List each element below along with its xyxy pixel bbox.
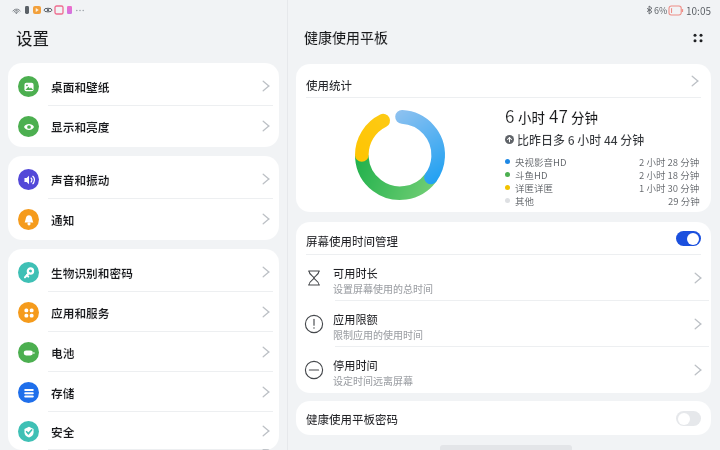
staticText: 详匿详匿: [515, 181, 554, 194]
button[interactable]: More options: [685, 25, 711, 51]
staticText: 6%: [654, 4, 668, 17]
staticText: 设定时间远离屏幕: [333, 373, 413, 387]
button[interactable]: Switch on: [676, 231, 701, 246]
staticText: 斗鱼HD: [515, 168, 548, 181]
staticText: 29 分钟: [668, 194, 700, 207]
staticText: 安全: [51, 423, 261, 440]
button[interactable]: 电池: [8, 332, 279, 372]
staticText: 设置: [16, 26, 49, 50]
staticText: 存储: [51, 384, 261, 401]
staticText: 小时: [515, 107, 549, 127]
staticText: 屏幕使用时间管理: [306, 233, 676, 250]
staticText: 通知: [51, 211, 261, 228]
staticText: 应用限额: [333, 311, 378, 327]
staticText: 6: [505, 103, 515, 128]
staticText: 声音和振动: [51, 171, 261, 188]
staticText: 10:05: [686, 3, 711, 17]
button[interactable]: 桌面和壁纸: [8, 66, 279, 106]
button[interactable]: 使用统计: [296, 64, 711, 98]
button[interactable]: 应用和服务: [8, 292, 279, 332]
button[interactable]: 显示和亮度: [8, 106, 279, 146]
staticText: 比昨日多 6 小时 44 分钟: [517, 131, 645, 148]
button[interactable]: 声音和振动: [8, 159, 279, 199]
button[interactable]: 应用限额: [296, 301, 711, 347]
button[interactable]: 存储: [8, 372, 279, 412]
button[interactable]: 通知: [8, 199, 279, 239]
staticText: 设置屏幕使用的总时间: [333, 281, 433, 295]
staticText: 限制应用的使用时间: [333, 327, 423, 341]
staticText: 桌面和壁纸: [51, 78, 261, 95]
staticText: 47: [549, 103, 568, 128]
staticText: 其他: [515, 194, 535, 207]
button[interactable]: 屏幕使用时间管理: [296, 222, 711, 255]
button[interactable]: 可用时长: [296, 255, 711, 301]
staticText: 2 小时 18 分钟: [639, 168, 700, 181]
staticText: 健康使用平板密码: [306, 411, 676, 428]
staticText: 生物识别和密码: [51, 264, 261, 281]
staticText: 分钟: [568, 107, 599, 127]
staticText: 电池: [51, 344, 261, 361]
button[interactable]: Switch off: [676, 411, 701, 426]
staticText: 可用时长: [333, 265, 378, 281]
staticText: 1 小时 30 分钟: [639, 181, 700, 194]
button[interactable]: 健康使用平板密码: [296, 401, 711, 435]
staticText: 使用统计: [306, 77, 690, 94]
button[interactable]: 安全: [8, 412, 279, 450]
button[interactable]: 停用时间: [296, 347, 711, 393]
staticText: 应用和服务: [51, 304, 261, 321]
staticText: 停用时间: [333, 357, 378, 373]
staticText: 健康使用平板: [304, 27, 388, 47]
staticText: 显示和亮度: [51, 118, 261, 135]
staticText: 2 小时 28 分钟: [639, 155, 700, 168]
button[interactable]: 生物识别和密码: [8, 252, 279, 292]
staticText: 央视影音HD: [515, 155, 567, 168]
